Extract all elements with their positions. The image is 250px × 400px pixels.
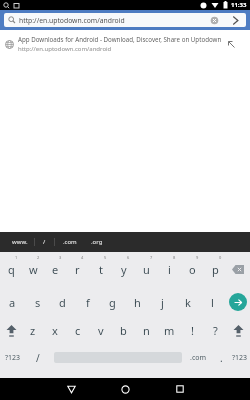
button[interactable]: . bbox=[212, 344, 230, 371]
button[interactable] bbox=[227, 40, 236, 49]
button[interactable]: h bbox=[125, 287, 150, 317]
button[interactable]: r bbox=[66, 252, 89, 287]
staticText: h bbox=[134, 295, 141, 310]
staticText: f bbox=[86, 295, 90, 310]
button[interactable]: ?123 bbox=[230, 344, 250, 371]
button[interactable] bbox=[51, 344, 185, 371]
button[interactable]: .com bbox=[185, 344, 212, 371]
button[interactable]: o bbox=[181, 252, 204, 287]
staticText: / bbox=[43, 238, 46, 246]
button[interactable] bbox=[231, 16, 240, 25]
staticText: ? bbox=[213, 323, 218, 338]
staticText: .com bbox=[63, 238, 77, 246]
staticText: z bbox=[30, 323, 36, 338]
staticText: 11:33 bbox=[231, 1, 247, 9]
button[interactable] bbox=[227, 317, 250, 344]
button[interactable] bbox=[56, 378, 86, 400]
button[interactable] bbox=[227, 252, 250, 287]
staticText: w bbox=[29, 262, 38, 277]
staticText: g bbox=[109, 295, 116, 310]
button[interactable]: q bbox=[0, 252, 22, 287]
button[interactable]: t bbox=[89, 252, 112, 287]
staticText: 0 bbox=[219, 255, 222, 260]
button[interactable] bbox=[225, 287, 250, 317]
button[interactable]: www. bbox=[6, 234, 34, 250]
button[interactable]: s bbox=[25, 287, 50, 317]
staticText: r bbox=[75, 262, 80, 277]
staticText: 3 bbox=[59, 255, 62, 260]
staticText: i bbox=[168, 262, 171, 277]
staticText: l bbox=[211, 295, 214, 310]
button[interactable]: .org bbox=[85, 234, 109, 250]
staticText: http://en.uptodown.com/android bbox=[18, 45, 112, 53]
button[interactable]: v bbox=[89, 317, 112, 344]
button[interactable]: j bbox=[150, 287, 175, 317]
button[interactable]: y bbox=[112, 252, 135, 287]
staticText: q bbox=[8, 262, 15, 277]
staticText: / bbox=[36, 351, 40, 365]
button[interactable]: l bbox=[200, 287, 225, 317]
staticText: n bbox=[143, 323, 150, 338]
button[interactable]: u bbox=[135, 252, 158, 287]
button[interactable]: / bbox=[35, 234, 54, 250]
staticText: s bbox=[35, 295, 41, 310]
staticText: m bbox=[164, 323, 175, 338]
staticText: t bbox=[99, 262, 103, 277]
button[interactable]: a bbox=[0, 287, 25, 317]
staticText: ?123 bbox=[232, 353, 248, 363]
staticText: u bbox=[143, 262, 150, 277]
button[interactable]: w bbox=[22, 252, 44, 287]
staticText: d bbox=[59, 295, 66, 310]
staticText: j bbox=[161, 295, 164, 310]
staticText: 1 bbox=[15, 255, 18, 260]
staticText: 8 bbox=[173, 255, 176, 260]
button[interactable] bbox=[110, 378, 140, 400]
staticText: .org bbox=[91, 238, 103, 246]
staticText: 2 bbox=[37, 255, 40, 260]
button[interactable]: p bbox=[204, 252, 227, 287]
staticText: k bbox=[185, 295, 191, 310]
staticText: o bbox=[189, 262, 196, 277]
staticText: .com bbox=[190, 353, 207, 363]
button[interactable]: f bbox=[75, 287, 100, 317]
staticText: v bbox=[98, 323, 104, 338]
button[interactable]: c bbox=[66, 317, 89, 344]
button[interactable]: e bbox=[44, 252, 66, 287]
button[interactable]: ?123 bbox=[0, 344, 25, 371]
button[interactable]: ? bbox=[204, 317, 227, 344]
button[interactable]: z bbox=[22, 317, 44, 344]
staticText: c bbox=[75, 323, 81, 338]
staticText: ! bbox=[191, 323, 194, 338]
button[interactable]: d bbox=[50, 287, 75, 317]
staticText: 7 bbox=[150, 255, 153, 260]
staticText: www. bbox=[12, 238, 28, 246]
staticText: p bbox=[212, 262, 219, 277]
button[interactable]: http://en.uptodown.com/android bbox=[4, 13, 246, 27]
button[interactable]: ! bbox=[181, 317, 204, 344]
button[interactable]: b bbox=[112, 317, 135, 344]
staticText: App Downloads for Android - Download, Di… bbox=[18, 35, 222, 43]
button[interactable]: m bbox=[158, 317, 181, 344]
button[interactable] bbox=[165, 378, 195, 400]
button[interactable] bbox=[0, 317, 22, 344]
staticText: y bbox=[121, 262, 127, 277]
staticText: 5 bbox=[104, 255, 107, 260]
button[interactable] bbox=[210, 16, 219, 25]
button[interactable]: g bbox=[100, 287, 125, 317]
button[interactable]: .com bbox=[55, 234, 85, 250]
button[interactable]: k bbox=[175, 287, 200, 317]
button[interactable]: n bbox=[135, 317, 158, 344]
button[interactable]: App Downloads for Android - Download, Di… bbox=[0, 30, 250, 58]
staticText: http://en.uptodown.com/android bbox=[19, 16, 210, 25]
staticText: b bbox=[120, 323, 127, 338]
staticText: a bbox=[9, 295, 16, 310]
staticText: 6 bbox=[127, 255, 130, 260]
button[interactable]: / bbox=[25, 344, 51, 371]
staticText: 4 bbox=[81, 255, 84, 260]
staticText: e bbox=[52, 262, 59, 277]
button[interactable]: i bbox=[158, 252, 181, 287]
staticText: 9 bbox=[196, 255, 199, 260]
staticText: x bbox=[52, 323, 58, 338]
staticText: ?123 bbox=[5, 353, 21, 363]
button[interactable]: x bbox=[44, 317, 66, 344]
